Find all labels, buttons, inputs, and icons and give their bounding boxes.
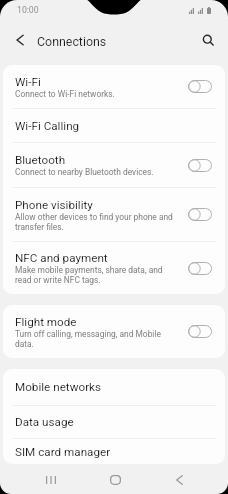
staticText: NFC and payment [15, 251, 108, 265]
button[interactable]: Search [196, 28, 220, 52]
button[interactable]: Back [162, 465, 196, 494]
staticText: Wi-Fi [15, 75, 41, 89]
button[interactable]: Wi-Fi [3, 65, 225, 108]
staticText: Allow other devices to find your phone a… [15, 212, 173, 232]
staticText: Data usage [15, 415, 74, 429]
staticText: Phone visibility [15, 198, 93, 212]
button[interactable]: Data usage [3, 406, 225, 438]
button[interactable]: NFC and payment [3, 242, 225, 294]
staticText: SIM card manager [15, 445, 111, 459]
staticText: 10:00 [17, 5, 39, 15]
button[interactable]: SIM card manager [3, 439, 225, 464]
staticText: Mobile networks [15, 380, 102, 394]
staticText: Connect to Wi-Fi networks. [15, 89, 115, 99]
button[interactable]: Toggle switch, off [188, 159, 212, 172]
button[interactable]: Wi-Fi Calling [3, 109, 225, 142]
button[interactable]: Flight mode [3, 305, 225, 358]
staticText: Connections [37, 34, 107, 49]
staticText: Connect to nearby Bluetooth devices. [15, 167, 154, 177]
button[interactable]: Home [98, 465, 132, 494]
staticText: Bluetooth [15, 153, 66, 167]
button[interactable]: Toggle switch, off [188, 208, 212, 221]
button[interactable]: Toggle switch, off [188, 325, 212, 338]
button[interactable]: Toggle switch, off [188, 80, 212, 93]
staticText: Flight mode [15, 315, 77, 329]
staticText: Make mobile payments, share data, and re… [15, 265, 163, 285]
button[interactable]: Navigate up [8, 28, 32, 52]
staticText: Wi-Fi Calling [15, 119, 80, 133]
button[interactable]: Mobile networks [3, 369, 225, 405]
button[interactable]: Bluetooth [3, 143, 225, 187]
button[interactable]: Phone visibility [3, 188, 225, 241]
button[interactable]: Toggle switch, off [188, 262, 212, 275]
button[interactable]: Recent apps [34, 465, 68, 494]
staticText: Turn off calling, messaging, and Mobile … [15, 329, 161, 349]
